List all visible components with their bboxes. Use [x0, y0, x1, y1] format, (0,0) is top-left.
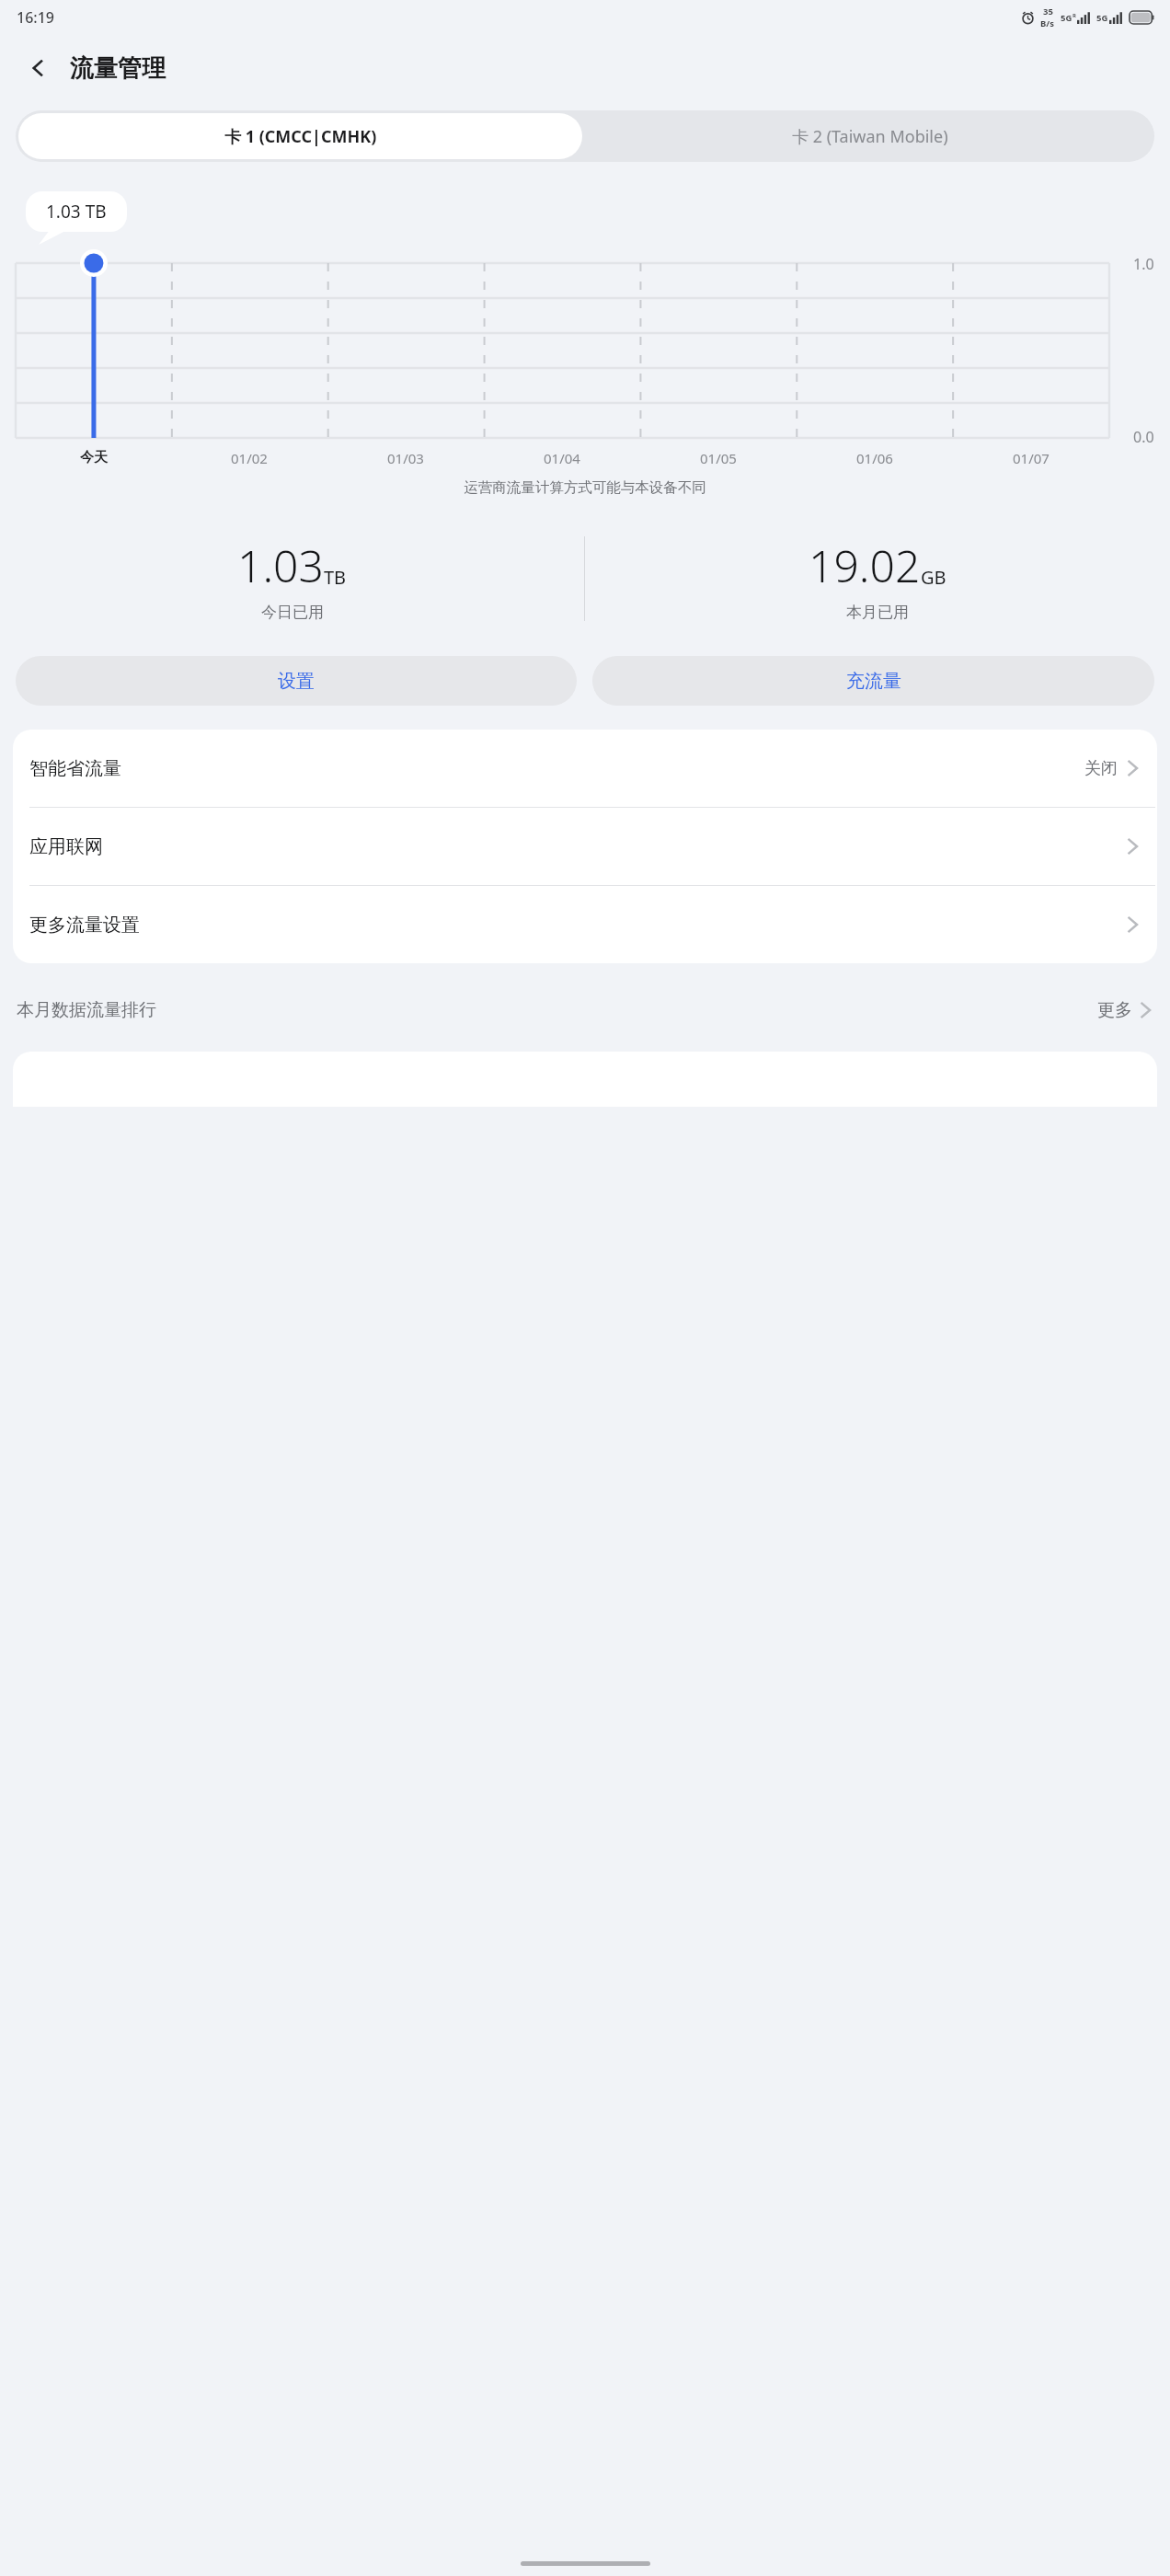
- staticText: 01/05: [700, 449, 737, 467]
- button[interactable]: 更多: [1097, 999, 1152, 1021]
- staticText: TB: [324, 565, 347, 590]
- button[interactable]: 卡 1 (CMCC|CMHK): [18, 113, 582, 159]
- staticText: 01/03: [387, 449, 424, 467]
- staticText: 更多流量设置: [29, 914, 140, 937]
- staticText: 1.03 TB: [46, 200, 107, 224]
- staticText: 更多: [1097, 999, 1132, 1021]
- staticText: 设置: [278, 670, 315, 693]
- button[interactable]: 设置: [16, 656, 577, 706]
- staticText: 本月数据流量排行: [17, 999, 156, 1021]
- button[interactable]: 卡 2 (Taiwan Mobile): [585, 110, 1154, 162]
- staticText: 35: [1043, 6, 1053, 17]
- staticText: 1.0: [1133, 254, 1154, 274]
- staticText: 5G: [1061, 12, 1072, 24]
- staticText: 运营商流量计算方式可能与本设备不同: [0, 478, 1170, 497]
- staticText: 流量管理: [70, 53, 166, 84]
- staticText: GB: [921, 565, 946, 590]
- button[interactable]: 智能省流量: [13, 730, 1157, 807]
- staticText: B/s: [1040, 17, 1055, 29]
- staticText: 0.0: [1133, 427, 1154, 447]
- staticText: 本月已用: [846, 603, 909, 622]
- button[interactable]: Back: [17, 46, 61, 90]
- staticText: R: [1072, 12, 1076, 19]
- staticText: 5G: [1096, 12, 1108, 24]
- staticText: 今日已用: [261, 603, 324, 622]
- staticText: 卡 2 (Taiwan Mobile): [792, 125, 948, 148]
- staticText: 01/04: [544, 449, 580, 467]
- staticText: 01/06: [856, 449, 893, 467]
- staticText: 01/02: [231, 449, 268, 467]
- staticText: 1.03: [237, 535, 324, 595]
- staticText: 应用联网: [29, 835, 103, 858]
- staticText: 16:19: [17, 7, 54, 28]
- button[interactable]: 应用联网: [13, 808, 1157, 885]
- staticText: 19.02: [809, 535, 921, 595]
- staticText: 充流量: [846, 670, 901, 693]
- staticText: 01/07: [1013, 449, 1050, 467]
- staticText: 今天: [80, 449, 108, 466]
- staticText: 关闭: [1084, 758, 1118, 779]
- staticText: 卡 1 (CMCC|CMHK): [224, 125, 377, 148]
- staticText: 智能省流量: [29, 757, 121, 780]
- button[interactable]: 充流量: [592, 656, 1154, 706]
- button[interactable]: 更多流量设置: [13, 886, 1157, 963]
